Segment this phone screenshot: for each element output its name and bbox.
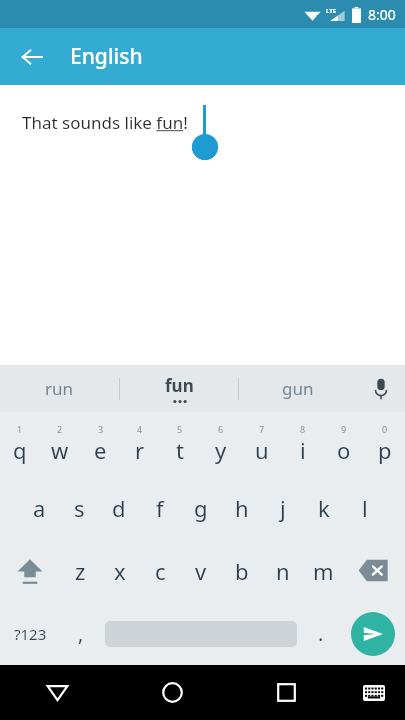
button[interactable]: d [99,476,139,539]
button[interactable]: f [139,476,180,539]
button[interactable]: a [19,476,59,539]
button[interactable]: l [344,476,385,539]
button[interactable]: 8 [282,412,323,476]
staticText: j [280,493,286,523]
staticText: LTE [326,7,337,15]
button[interactable]: 7 [241,412,282,476]
button[interactable]: m [303,539,344,602]
staticText: 4 [137,423,143,435]
staticText: 8:00 [368,5,396,24]
staticText: 8 [300,423,306,435]
staticText: v [195,556,207,586]
staticText: 2 [57,423,63,435]
button[interactable]: ?123 [0,602,61,665]
button[interactable]: Switch keyboard [343,665,405,720]
staticText: r [135,435,145,465]
button[interactable]: j [262,476,303,539]
staticText: q [13,435,27,465]
staticText: z [75,556,86,586]
other: Cursor handle [192,129,218,161]
button[interactable]: 1 [0,412,40,476]
staticText: o [337,435,351,465]
button[interactable]: fun [120,365,238,412]
staticText: 1 [17,423,23,435]
button[interactable]: run [0,365,119,412]
button[interactable]: 6 [200,412,241,476]
button[interactable]: 9 [323,412,364,476]
button[interactable]: 5 [160,412,200,476]
staticText: i [300,435,306,465]
staticText: English [70,42,143,71]
staticText: d [112,493,126,523]
button[interactable]: n [262,539,303,602]
button[interactable]: 0 [364,412,405,476]
button[interactable]: s [59,476,99,539]
staticText: f [156,493,164,523]
staticText: 5 [177,423,183,435]
staticText: t [176,435,184,465]
button[interactable]: Home [115,665,229,720]
staticText: s [74,493,85,523]
button[interactable]: 4 [120,412,160,476]
button[interactable]: Shift [0,539,60,602]
button[interactable]: gun [239,365,357,412]
button[interactable]: Space [101,602,301,665]
button[interactable]: x [100,539,140,602]
button[interactable]: Recents [229,665,343,720]
staticText: w [51,435,69,465]
button[interactable]: z [60,539,100,602]
staticText: l [362,493,368,523]
staticText: gun [282,377,314,400]
staticText: a [33,493,46,523]
button[interactable]: Voice input [357,365,405,412]
button[interactable]: Send [341,602,405,665]
staticText: run [45,377,74,400]
button[interactable]: v [180,539,221,602]
button[interactable]: 3 [80,412,120,476]
staticText: m [313,556,334,586]
staticText: e [94,435,107,465]
staticText: fun [165,374,194,397]
button[interactable]: . [301,602,341,665]
button[interactable]: Back [0,665,115,720]
staticText: 0 [382,423,388,435]
staticText: h [235,493,249,523]
button[interactable]: h [221,476,262,539]
staticText: 3 [98,423,104,435]
staticText: k [318,493,330,523]
button[interactable]: k [303,476,344,539]
staticText: b [235,556,249,586]
staticText: ?123 [14,624,47,644]
button[interactable]: Backspace [344,539,405,602]
staticText: n [276,556,290,586]
staticText: p [378,435,392,465]
button[interactable]: Back [8,33,56,81]
staticText: 9 [341,423,347,435]
button[interactable]: c [140,539,180,602]
staticText: x [114,556,126,586]
button[interactable]: b [221,539,262,602]
staticText: 7 [259,423,265,435]
staticText: u [255,435,269,465]
button[interactable]: 2 [40,412,80,476]
staticText: , [78,620,84,647]
staticText: . [318,620,324,647]
button[interactable]: g [180,476,221,539]
staticText: 6 [218,423,224,435]
button[interactable]: , [61,602,101,665]
staticText: y [215,435,227,465]
staticText: g [194,493,208,523]
staticText: c [155,556,166,586]
staticText: That sounds like fun! [22,111,188,134]
